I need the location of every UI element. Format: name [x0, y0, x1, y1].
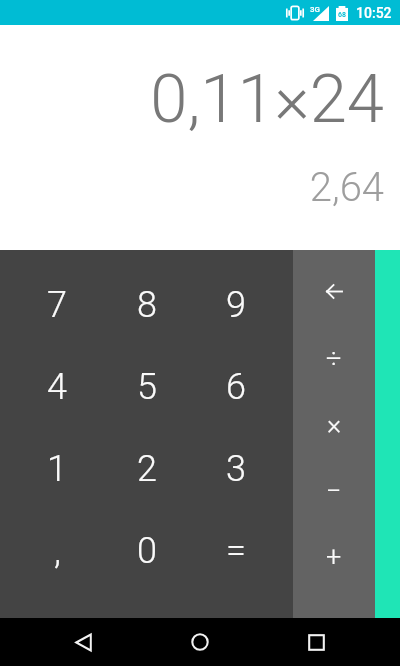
button[interactable]: Multiply — [293, 392, 375, 458]
staticText: , — [54, 530, 61, 572]
button[interactable]: 8 — [102, 263, 191, 346]
staticText: − — [326, 475, 342, 507]
staticText: ÷ — [326, 343, 342, 375]
button[interactable]: 5 — [102, 346, 191, 428]
staticText: 68 — [338, 11, 346, 19]
button[interactable]: Backspace — [293, 258, 375, 325]
staticText: 6 — [226, 366, 246, 408]
staticText: 0 — [137, 530, 157, 572]
staticText: + — [326, 541, 342, 573]
button[interactable]: = — [191, 510, 280, 592]
button[interactable]: 1 — [12, 428, 102, 510]
staticText: 2,64 — [309, 164, 384, 211]
button[interactable]: 9 — [191, 263, 280, 346]
staticText: 3G — [310, 5, 320, 14]
staticText: × — [327, 409, 342, 441]
button[interactable]: Recent apps — [288, 618, 345, 666]
staticText: 1 — [47, 448, 67, 490]
staticText: 0,11×24 — [150, 60, 384, 139]
staticText: 10:52 — [356, 5, 392, 21]
button[interactable]: 4 — [12, 346, 102, 428]
button[interactable]: Plus — [293, 524, 375, 590]
staticText: 5 — [137, 366, 157, 408]
button[interactable]: Home — [172, 618, 228, 666]
button[interactable]: , — [12, 510, 102, 592]
staticText: 3 — [226, 448, 246, 490]
button[interactable]: 3 — [191, 428, 280, 510]
button[interactable]: Minus — [293, 458, 375, 524]
button[interactable]: Back — [55, 618, 111, 666]
staticText: 8 — [137, 284, 157, 326]
button[interactable]: 6 — [191, 346, 280, 428]
button[interactable]: 7 — [12, 263, 102, 346]
staticText: 4 — [47, 366, 67, 408]
staticText: 7 — [47, 284, 67, 326]
staticText: = — [226, 530, 246, 572]
button[interactable]: 0 — [102, 510, 191, 592]
staticText: 9 — [226, 284, 246, 326]
button[interactable]: Divide — [293, 325, 375, 392]
staticText: 2 — [137, 448, 157, 490]
button[interactable]: 2 — [102, 428, 191, 510]
